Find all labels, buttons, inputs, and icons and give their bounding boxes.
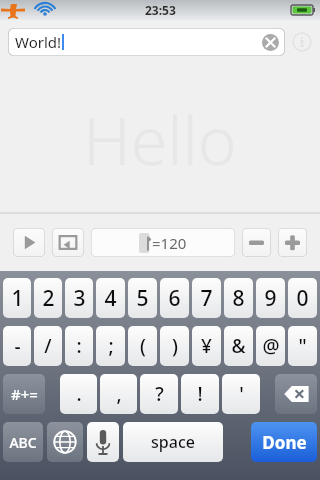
button[interactable]: ? <box>140 374 178 414</box>
button[interactable]: 9 <box>256 278 285 318</box>
staticText: , <box>116 381 122 407</box>
staticText: World! <box>15 32 62 52</box>
staticText: 6 <box>168 284 181 313</box>
staticText: ! <box>197 381 203 407</box>
button[interactable]: ABC <box>3 422 43 462</box>
staticText: ; <box>108 333 114 359</box>
button[interactable]: Decrease tempo <box>242 228 271 257</box>
staticText: ' <box>239 381 244 407</box>
button[interactable]: Done <box>251 422 317 462</box>
button[interactable]: 6 <box>160 278 189 318</box>
staticText: 5 <box>136 284 149 313</box>
button[interactable]: 1 <box>3 278 31 318</box>
staticText: Done <box>262 431 307 454</box>
staticText: " <box>298 333 307 359</box>
staticText: ( <box>140 333 146 359</box>
staticText: ) <box>172 333 178 359</box>
staticText: - <box>14 333 21 359</box>
button[interactable]: ; <box>96 326 125 366</box>
button[interactable]: =120 <box>91 228 235 257</box>
staticText: =120 <box>152 233 187 253</box>
button[interactable]: ( <box>128 326 157 366</box>
staticText: 7 <box>200 284 213 313</box>
staticText: 9 <box>264 284 277 313</box>
button[interactable]: ¥ <box>192 326 221 366</box>
button[interactable]: World! <box>8 28 285 56</box>
button[interactable]: Clear text <box>262 34 279 51</box>
staticText: & <box>231 333 246 359</box>
button[interactable]: - <box>3 326 31 366</box>
staticText: space <box>151 431 195 453</box>
staticText: : <box>76 333 82 359</box>
button[interactable]: Info <box>292 32 312 52</box>
staticText: 1 <box>11 284 24 313</box>
button[interactable]: space <box>123 422 223 462</box>
button[interactable]: " <box>288 326 317 366</box>
staticText: @ <box>262 333 280 359</box>
button[interactable]: 0 <box>288 278 317 318</box>
button[interactable]: : <box>65 326 93 366</box>
staticText: ¥ <box>201 333 212 359</box>
button[interactable]: 5 <box>128 278 157 318</box>
button[interactable]: 3 <box>65 278 93 318</box>
button[interactable]: 7 <box>192 278 221 318</box>
button[interactable]: Dictate <box>87 422 119 462</box>
button[interactable]: . <box>60 374 97 414</box>
staticText: ? <box>155 381 164 407</box>
staticText: ABC <box>9 433 37 452</box>
staticText: 8 <box>232 284 245 313</box>
button[interactable]: 4 <box>96 278 125 318</box>
staticText: 4 <box>104 284 117 313</box>
staticText: 2 <box>42 284 55 313</box>
staticText: i <box>300 34 305 50</box>
staticText: 0 <box>296 284 309 313</box>
staticText: 23:53 <box>145 2 176 18</box>
button[interactable]: , <box>100 374 137 414</box>
button[interactable]: ) <box>160 326 189 366</box>
button[interactable]: @ <box>256 326 285 366</box>
staticText: / <box>44 333 52 359</box>
staticText: . <box>76 381 82 407</box>
staticText: 3 <box>73 284 86 313</box>
button[interactable]: ' <box>222 374 260 414</box>
button[interactable]: 8 <box>224 278 253 318</box>
button[interactable]: Increase tempo <box>278 228 307 257</box>
button[interactable]: Backspace <box>275 374 317 414</box>
button[interactable]: / <box>34 326 62 366</box>
button[interactable]: & <box>224 326 253 366</box>
staticText: #+= <box>11 384 38 404</box>
button[interactable]: Loop <box>52 228 84 257</box>
button[interactable]: 2 <box>34 278 62 318</box>
button[interactable]: Change keyboard <box>47 422 83 462</box>
button[interactable]: ! <box>181 374 219 414</box>
button[interactable]: #+= <box>3 374 45 414</box>
button[interactable]: Play <box>13 228 45 257</box>
